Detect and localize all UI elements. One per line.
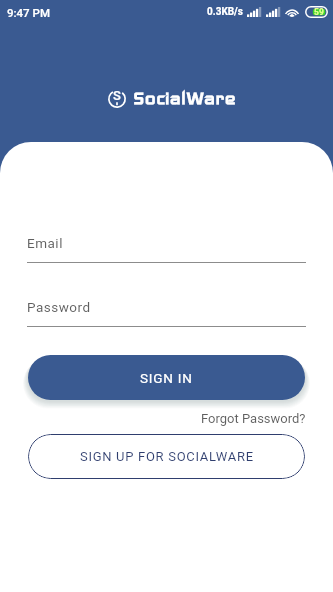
staticText: Password xyxy=(27,299,91,315)
button[interactable]: SIGN IN xyxy=(28,355,305,400)
staticText: 9:47 PM xyxy=(7,6,50,19)
staticText: SIGN UP FOR SOCIALWARE xyxy=(80,449,254,464)
staticText: S xyxy=(113,88,121,103)
button[interactable]: SIGN UP FOR SOCIALWARE xyxy=(28,434,305,479)
button[interactable]: Forgot Password? xyxy=(196,408,306,428)
staticText: 59 xyxy=(314,7,324,17)
staticText: 0.3KB/s xyxy=(207,6,244,18)
staticText: SIGN IN xyxy=(140,370,193,386)
staticText: SocialWare xyxy=(133,86,236,109)
staticText: Forgot Password? xyxy=(201,411,306,426)
staticText: Email xyxy=(27,235,63,251)
